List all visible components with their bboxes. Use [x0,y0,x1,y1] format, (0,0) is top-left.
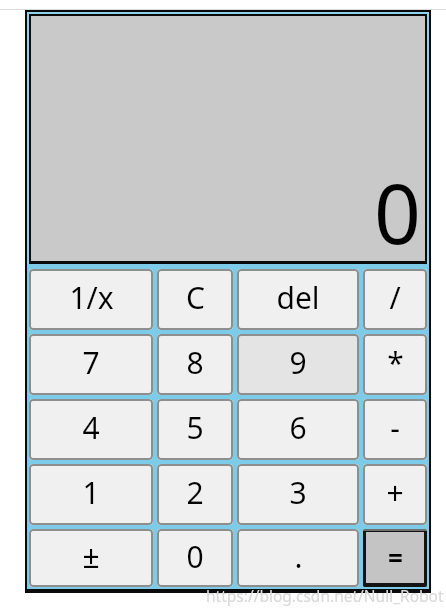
staticText: 1 [82,472,100,513]
button[interactable]: 1/x [29,269,153,330]
button[interactable]: 4 [29,399,153,460]
staticText: https://blog.csdn.net/Null_Robot [206,585,444,606]
staticText: ± [82,536,100,577]
staticText: - [390,407,400,448]
button[interactable]: 2 [157,464,233,525]
staticText: + [386,472,404,513]
button[interactable]: . [237,529,359,587]
button[interactable]: 3 [237,464,359,525]
button[interactable]: 7 [29,334,153,395]
button[interactable]: 5 [157,399,233,460]
staticText: = [388,540,403,575]
staticText: 3 [289,472,307,513]
staticText: * [387,342,404,383]
button[interactable]: 8 [157,334,233,395]
button[interactable]: ± [29,529,153,587]
staticText: del [276,277,320,318]
staticText: 6 [289,407,307,448]
staticText: 2 [186,472,204,513]
staticText: 0 [374,156,421,268]
staticText: 4 [82,407,100,448]
button[interactable]: = [366,532,424,583]
staticText: 9 [289,342,307,383]
staticText: 7 [82,342,100,383]
button[interactable]: + [363,464,427,525]
staticText: 8 [186,342,204,383]
button[interactable]: - [363,399,427,460]
button[interactable]: 6 [237,399,359,460]
button[interactable]: 0 [157,529,233,587]
staticText: . [294,536,303,577]
button[interactable]: C [157,269,233,330]
button[interactable]: 9 [237,334,359,395]
staticText: 1/x [69,277,114,318]
button[interactable]: * [363,334,427,395]
button[interactable]: / [363,269,427,330]
staticText: 5 [186,407,204,448]
staticText: 0 [186,536,204,577]
staticText: C [186,277,205,318]
button[interactable]: del [237,269,359,330]
staticText: / [389,277,401,318]
button[interactable]: 1 [29,464,153,525]
